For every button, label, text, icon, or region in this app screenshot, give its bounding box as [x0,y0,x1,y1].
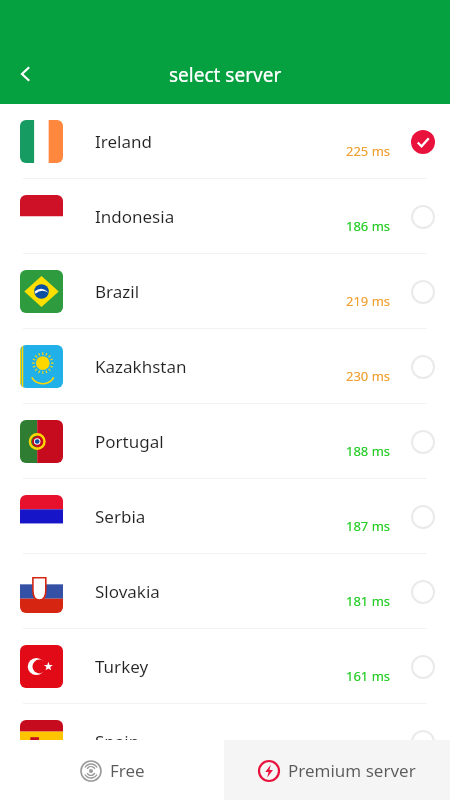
button[interactable]: Spain [0,704,450,779]
staticText: Turkey [95,655,149,678]
staticText: Serbia [95,505,146,528]
button[interactable]: Slovakia [0,554,450,629]
staticText: 188 ms [346,442,391,460]
staticText: 230 ms [346,367,391,385]
staticText: Slovakia [95,580,160,603]
staticText: Kazakhstan [95,355,187,378]
staticText: 187 ms [346,517,391,535]
staticText: 181 ms [346,592,391,610]
button[interactable]: Ireland [0,104,450,179]
button[interactable]: Brazil [0,254,450,329]
button[interactable]: Free [0,740,224,800]
staticText: Free [110,759,145,782]
button[interactable]: Back [4,52,48,96]
button[interactable]: Kazakhstan [0,329,450,404]
button[interactable]: Turkey [0,629,450,704]
staticText: Ireland [95,130,152,153]
staticText: 225 ms [346,142,391,160]
staticText: 186 ms [346,217,391,235]
staticText: Spain [95,730,140,753]
staticText: 161 ms [346,667,391,685]
button[interactable]: Serbia [0,479,450,554]
button[interactable]: Premium server [224,740,450,800]
staticText: Portugal [95,430,164,453]
staticText: Indonesia [95,205,175,228]
staticText: 219 ms [346,292,391,310]
staticText: Brazil [95,280,140,303]
staticText: select server [169,62,282,88]
button[interactable]: Indonesia [0,179,450,254]
staticText: Premium server [288,759,416,782]
button[interactable]: Portugal [0,404,450,479]
